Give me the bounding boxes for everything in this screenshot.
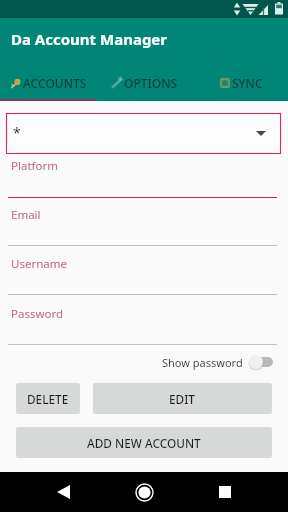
staticText: ACCOUNTS xyxy=(23,75,87,91)
button[interactable]: Platform xyxy=(0,154,288,199)
button[interactable]: EDIT xyxy=(93,383,272,414)
button[interactable]: SYNC xyxy=(192,66,288,99)
staticText: * xyxy=(13,123,21,142)
button[interactable]: Password xyxy=(0,302,288,346)
staticText: OPTIONS xyxy=(124,75,178,91)
button[interactable]: Home xyxy=(126,474,162,510)
button[interactable]: Recents xyxy=(207,474,243,510)
staticText: Da Account Manager xyxy=(11,29,168,49)
staticText: Email xyxy=(11,207,41,223)
staticText: Username xyxy=(11,256,67,272)
staticText: ADD NEW ACCOUNT xyxy=(87,435,201,451)
staticText: SYNC xyxy=(232,75,263,91)
button[interactable]: ACCOUNTS xyxy=(0,66,96,99)
button[interactable]: DELETE xyxy=(16,383,80,414)
button[interactable]: Username xyxy=(0,252,288,296)
staticText: Platform xyxy=(11,158,58,174)
button[interactable]: Email xyxy=(0,203,288,247)
staticText: Password xyxy=(11,306,64,322)
staticText: EDIT xyxy=(169,391,196,407)
staticText: Show password xyxy=(162,355,243,370)
staticText: DELETE xyxy=(27,391,69,407)
button[interactable]: ADD NEW ACCOUNT xyxy=(16,427,272,458)
button[interactable]: Show password xyxy=(162,353,274,371)
button[interactable]: Back xyxy=(45,474,81,510)
button[interactable]: OPTIONS xyxy=(96,66,192,99)
button[interactable]: * xyxy=(6,113,281,154)
